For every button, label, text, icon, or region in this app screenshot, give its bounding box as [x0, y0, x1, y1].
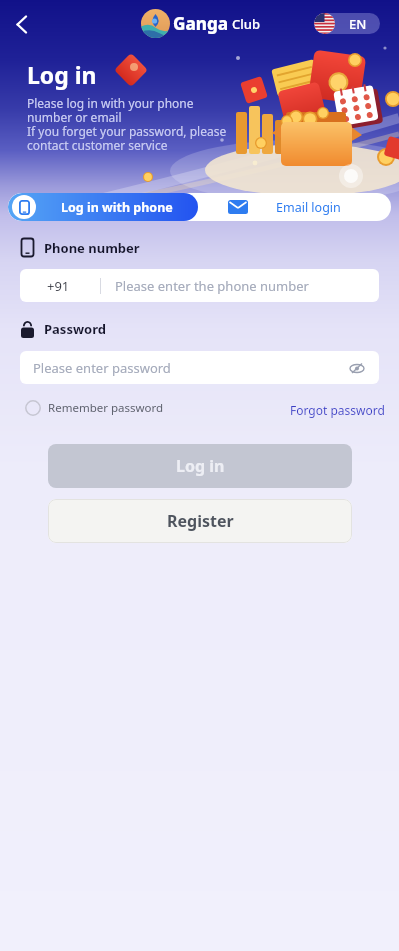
staticText: Please log in with your phone number or … — [27, 95, 227, 153]
staticText: Please enter password — [33, 359, 171, 377]
button[interactable]: Forgot password — [290, 402, 385, 418]
staticText: Remember password — [48, 400, 164, 416]
button[interactable]: Log in with phone — [8, 193, 198, 221]
button[interactable]: Remember password — [25, 400, 164, 416]
staticText: Email login — [276, 199, 341, 216]
button[interactable] — [6, 8, 38, 40]
staticText: Log in — [27, 59, 97, 90]
button[interactable]: Register — [48, 499, 352, 543]
staticText: +91 — [47, 277, 70, 295]
staticText: Password — [44, 320, 106, 338]
staticText: Ganga — [173, 12, 229, 35]
staticText: Club — [232, 15, 260, 33]
staticText: Register — [167, 510, 234, 532]
button[interactable]: EN — [314, 13, 380, 34]
staticText: Log in with phone — [61, 199, 173, 216]
staticText: Please enter the phone number — [115, 277, 309, 295]
button[interactable]: Email login — [198, 193, 391, 221]
button[interactable]: Log in — [48, 444, 352, 488]
staticText: EN — [349, 15, 367, 33]
button[interactable]: +91 — [20, 269, 379, 302]
button[interactable]: Please enter password — [20, 351, 379, 384]
staticText: Phone number — [44, 239, 140, 257]
staticText: Log in — [176, 455, 225, 477]
